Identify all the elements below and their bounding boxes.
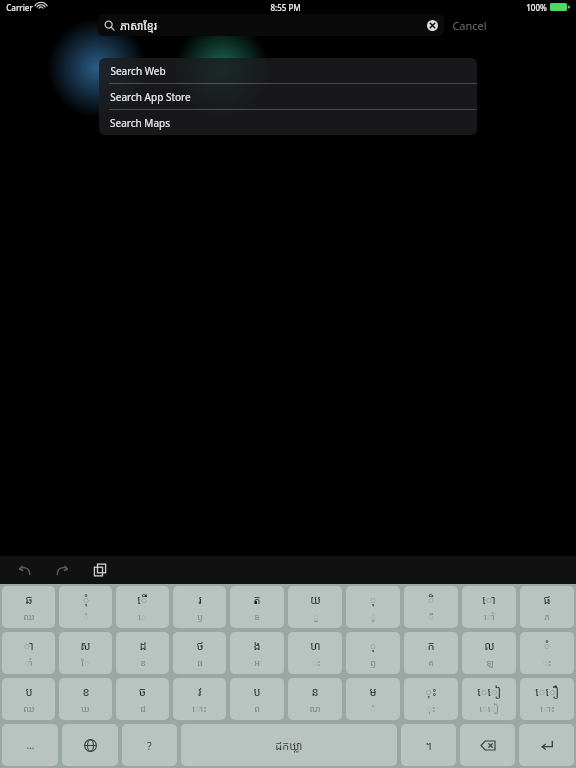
staticText: ូ [370, 610, 376, 622]
staticText: េា [482, 592, 496, 607]
staticText: ា [23, 638, 34, 653]
staticText: Cancel [452, 18, 487, 33]
staticText: ឡ [486, 656, 494, 668]
button[interactable]: យ [288, 586, 342, 628]
button[interactable]: ន [288, 678, 342, 720]
button[interactable]: ង [230, 632, 284, 674]
button[interactable]: ហ [288, 632, 342, 674]
staticText: ។ [425, 738, 432, 753]
staticText: ុ [369, 638, 377, 653]
button[interactable]: ដ [116, 632, 169, 674]
button[interactable]: ខ [59, 678, 112, 720]
button[interactable]: ច [116, 678, 169, 720]
button[interactable]: េៀ [462, 678, 516, 720]
staticText: ឃ [81, 702, 90, 714]
staticText: រ [198, 592, 202, 607]
staticText: ុ [369, 592, 377, 607]
staticText: ឫ [197, 610, 203, 622]
staticText: Search Maps [110, 116, 170, 130]
staticText: េី [137, 592, 148, 607]
staticText: ឆ [25, 592, 33, 607]
staticText: Carrier [6, 2, 33, 13]
button[interactable]: Backspace [460, 724, 515, 766]
staticText: ី [428, 610, 434, 622]
staticText: ឈ [23, 610, 35, 622]
staticText: ខ [82, 684, 90, 699]
staticText: 8:55 PM [270, 2, 301, 13]
button[interactable]: Return [519, 724, 574, 766]
staticText: ... [26, 738, 35, 752]
button[interactable]: ផ [520, 586, 574, 628]
staticText: ឈ [23, 702, 35, 714]
button[interactable]: ។ [401, 724, 456, 766]
button[interactable]: Search App Store [99, 84, 477, 109]
button[interactable]: ុំ [59, 586, 112, 628]
staticText: ភាសាខ្មែរ [120, 18, 157, 33]
staticText: ម [369, 684, 377, 699]
button[interactable]: ុ [346, 632, 400, 674]
button[interactable]: ភាសាខ្មែរ [98, 14, 444, 36]
button[interactable]: រ [173, 586, 226, 628]
staticText: គ [428, 656, 434, 668]
button[interactable]: Clear text [427, 20, 438, 31]
staticText: ំ [543, 638, 551, 653]
staticText: ដ [139, 638, 147, 653]
staticText: ះ [542, 656, 552, 668]
staticText: ត [253, 592, 261, 607]
button[interactable]: ? [122, 724, 177, 766]
staticText: េៀ [479, 702, 499, 714]
staticText: ៃ [81, 656, 90, 668]
button[interactable]: ត [230, 586, 284, 628]
staticText: វ [198, 684, 202, 699]
staticText: េៀ [477, 684, 501, 699]
staticText: ស [80, 638, 91, 653]
button[interactable]: Paste [88, 558, 112, 582]
button[interactable]: Search Maps [99, 110, 477, 135]
button[interactable]: ស [59, 632, 112, 674]
staticText: ភ [544, 610, 550, 622]
button[interactable]: ុ [346, 586, 400, 628]
button[interactable]: ិ [404, 586, 458, 628]
staticText: ាំ [24, 656, 33, 668]
staticText: យ [310, 592, 321, 607]
staticText: ួ [313, 610, 319, 622]
button[interactable]: េា [462, 586, 516, 628]
staticText: េាះ [540, 702, 555, 714]
button[interactable]: ... [2, 724, 58, 766]
button[interactable]: Cancel [444, 14, 514, 36]
button[interactable]: Search Web [99, 58, 477, 83]
button[interactable]: ា [2, 632, 55, 674]
staticText: ព [254, 702, 260, 714]
staticText: ប [25, 684, 33, 699]
button[interactable]: ុះ [404, 678, 458, 720]
button[interactable]: ំ [520, 632, 574, 674]
button[interactable]: េឿ [520, 678, 574, 720]
staticText: ះ [311, 656, 321, 668]
button[interactable]: ប [230, 678, 284, 720]
staticText: ុះ [425, 684, 437, 699]
staticText: ុះ [426, 702, 436, 714]
button[interactable]: ប [2, 678, 55, 720]
button[interactable]: Redo [50, 558, 74, 582]
staticText: ក [427, 638, 435, 653]
staticText: ផ [543, 592, 551, 607]
staticText: ធ [197, 656, 203, 668]
staticText: ទ [254, 610, 260, 622]
button[interactable]: ល [462, 632, 516, 674]
button[interactable]: ម [346, 678, 400, 720]
staticText: ឭ [370, 656, 376, 668]
staticText: ច [139, 684, 146, 699]
staticText: ំ [83, 610, 89, 622]
button[interactable]: Undo [12, 558, 36, 582]
button[interactable]: ឆ [2, 586, 55, 628]
button[interactable]: ដកឃ្លា [181, 724, 397, 766]
button[interactable]: េី [116, 586, 169, 628]
button[interactable]: ថ [173, 632, 226, 674]
staticText: េឿ [535, 684, 559, 699]
button[interactable]: Switch keyboard [62, 724, 118, 766]
button[interactable]: វ [173, 678, 226, 720]
staticText: ណ [309, 702, 321, 714]
button[interactable]: ក [404, 632, 458, 674]
staticText: ដកឃ្លា [275, 738, 303, 753]
staticText: Search App Store [110, 90, 191, 104]
